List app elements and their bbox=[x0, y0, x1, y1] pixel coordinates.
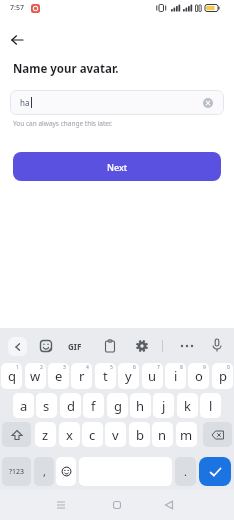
button[interactable]: q bbox=[1, 363, 22, 389]
button[interactable]: u bbox=[142, 363, 163, 389]
staticText: ha bbox=[20, 97, 30, 108]
button[interactable]: v bbox=[105, 422, 126, 447]
button[interactable]: Next bbox=[13, 152, 221, 181]
staticText: 6 bbox=[133, 364, 136, 371]
staticText: 8 bbox=[180, 364, 183, 371]
button[interactable]: n bbox=[152, 422, 173, 447]
button[interactable] bbox=[8, 337, 27, 356]
button[interactable]: , bbox=[34, 457, 54, 486]
button[interactable]: k bbox=[177, 393, 198, 418]
staticText: r bbox=[79, 367, 85, 385]
button[interactable]: r bbox=[71, 363, 92, 389]
button[interactable] bbox=[103, 339, 117, 353]
staticText: GIF bbox=[68, 341, 82, 352]
staticText: h bbox=[136, 397, 145, 415]
staticText: 9 bbox=[203, 364, 206, 371]
staticText: g bbox=[114, 397, 122, 415]
button[interactable] bbox=[178, 339, 196, 353]
staticText: x bbox=[66, 426, 73, 444]
staticText: q bbox=[8, 367, 16, 385]
staticText: e bbox=[55, 367, 63, 385]
button[interactable]: . bbox=[175, 457, 196, 486]
staticText: d bbox=[67, 397, 75, 415]
button[interactable]: m bbox=[176, 422, 197, 447]
button[interactable]: x bbox=[59, 422, 80, 447]
staticText: , bbox=[43, 464, 46, 479]
button[interactable]: d bbox=[60, 393, 81, 418]
staticText: j bbox=[162, 397, 166, 415]
button[interactable]: e bbox=[48, 363, 69, 389]
staticText: 3 bbox=[63, 364, 66, 371]
staticText: 4 bbox=[86, 364, 89, 371]
button[interactable]: GIF bbox=[68, 341, 82, 352]
staticText: p bbox=[219, 367, 227, 385]
button[interactable]: y bbox=[118, 363, 139, 389]
button[interactable]: i bbox=[165, 363, 186, 389]
staticText: o bbox=[195, 367, 203, 385]
button[interactable] bbox=[39, 339, 53, 353]
staticText: . bbox=[184, 464, 187, 479]
staticText: n bbox=[158, 426, 167, 444]
staticText: 5 bbox=[110, 364, 113, 371]
button[interactable] bbox=[135, 339, 149, 353]
button[interactable] bbox=[203, 422, 232, 447]
staticText: b bbox=[136, 426, 144, 444]
staticText: l bbox=[209, 397, 213, 415]
staticText: v bbox=[112, 426, 119, 444]
staticText: u bbox=[148, 367, 157, 385]
button[interactable] bbox=[56, 457, 76, 486]
button[interactable]: h bbox=[130, 393, 151, 418]
button[interactable]: ?123 bbox=[2, 457, 31, 486]
button[interactable]: z bbox=[35, 422, 56, 447]
staticText: s bbox=[43, 397, 50, 415]
button[interactable] bbox=[2, 422, 31, 447]
button[interactable] bbox=[211, 338, 223, 354]
staticText: Name your avatar. bbox=[13, 61, 119, 77]
staticText: z bbox=[42, 426, 49, 444]
button[interactable]: t bbox=[95, 363, 116, 389]
staticText: ?123 bbox=[9, 467, 25, 477]
button[interactable] bbox=[8, 31, 28, 49]
staticText: k bbox=[184, 397, 191, 415]
staticText: 0 bbox=[227, 364, 230, 371]
button[interactable] bbox=[203, 98, 213, 108]
staticText: y bbox=[125, 367, 132, 385]
staticText: m bbox=[180, 426, 193, 444]
button[interactable]: ha bbox=[10, 90, 224, 115]
button[interactable]: p bbox=[212, 363, 233, 389]
staticText: f bbox=[91, 397, 96, 415]
button[interactable] bbox=[110, 498, 124, 512]
staticText: w bbox=[30, 367, 41, 385]
staticText: 7:57 bbox=[10, 3, 24, 13]
button[interactable]: a bbox=[13, 393, 34, 418]
button[interactable]: b bbox=[129, 422, 150, 447]
button[interactable]: s bbox=[36, 393, 57, 418]
button[interactable]: c bbox=[82, 422, 103, 447]
staticText: 1 bbox=[16, 364, 19, 371]
button[interactable]: j bbox=[153, 393, 174, 418]
button[interactable] bbox=[54, 498, 68, 512]
staticText: i bbox=[174, 367, 178, 385]
staticText: a bbox=[20, 397, 28, 415]
button[interactable] bbox=[162, 498, 176, 512]
staticText: 7 bbox=[157, 364, 160, 371]
button[interactable] bbox=[199, 457, 231, 486]
button[interactable]: w bbox=[25, 363, 46, 389]
button[interactable]: o bbox=[188, 363, 209, 389]
staticText: t bbox=[103, 367, 108, 385]
staticText: 2 bbox=[40, 364, 43, 371]
button[interactable]: g bbox=[107, 393, 128, 418]
staticText: c bbox=[89, 426, 96, 444]
staticText: You can always change this later. bbox=[13, 119, 113, 128]
staticText: Next bbox=[107, 161, 128, 173]
button[interactable]: l bbox=[200, 393, 221, 418]
button[interactable]: f bbox=[83, 393, 104, 418]
